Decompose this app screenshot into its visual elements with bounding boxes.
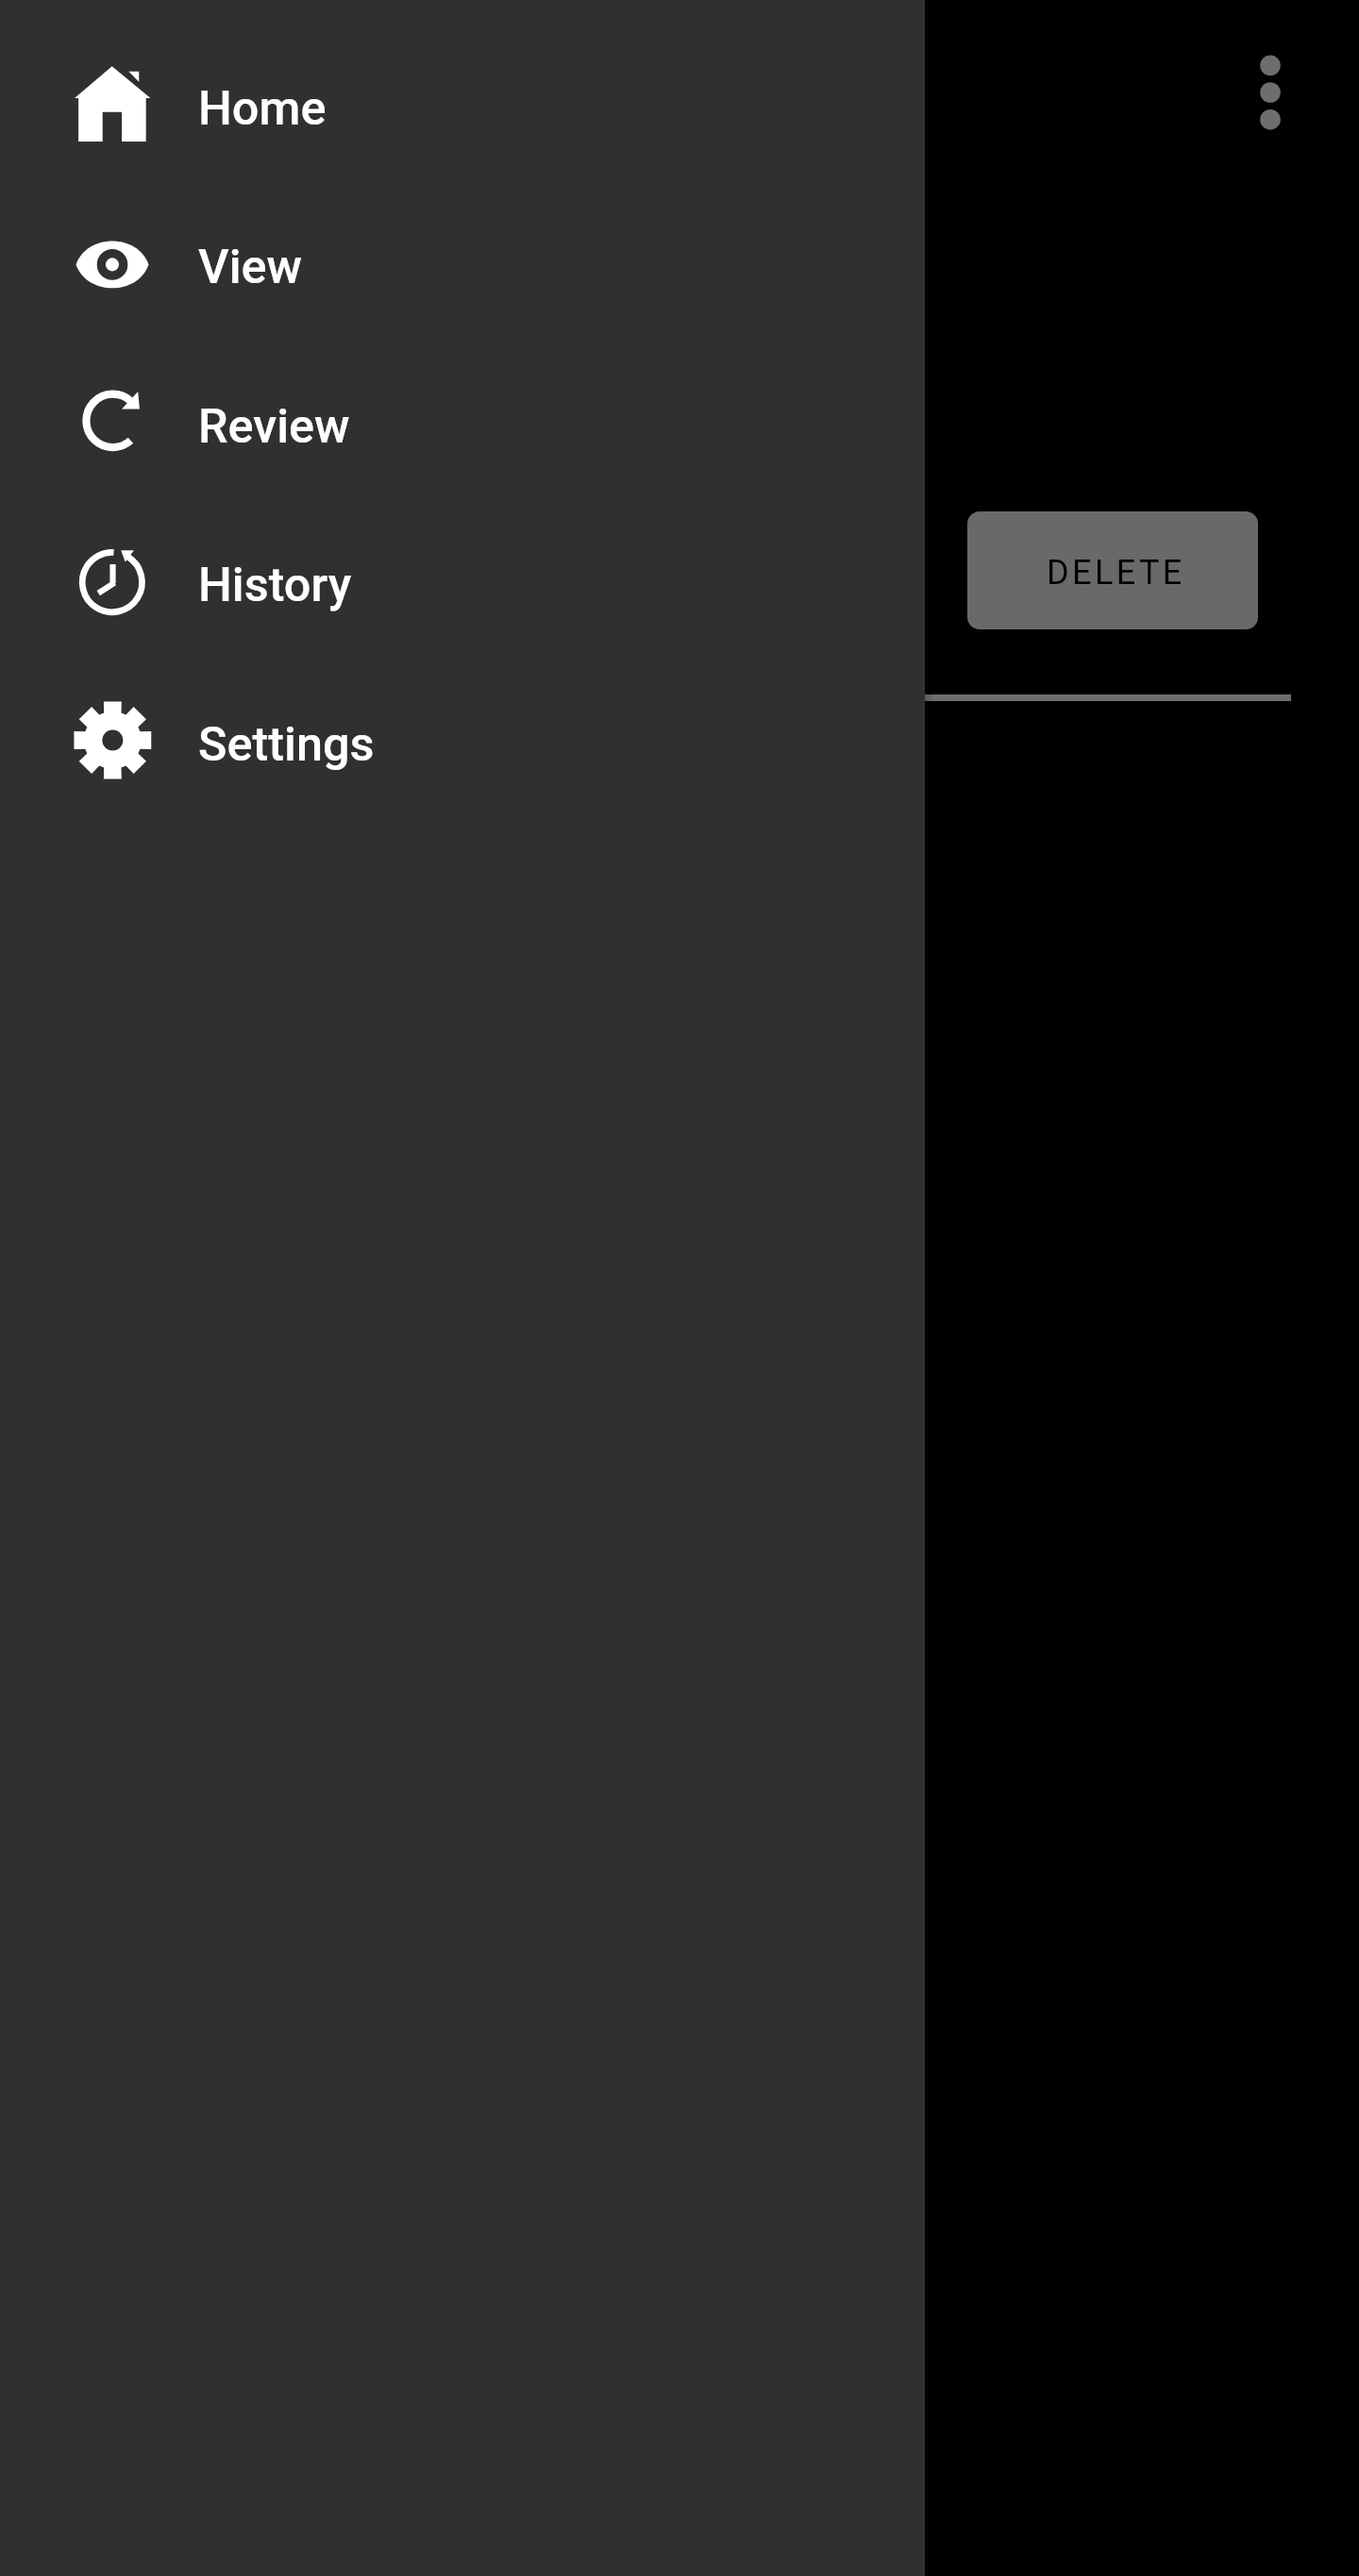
staticText: Home bbox=[198, 80, 327, 136]
button[interactable]: History bbox=[0, 501, 925, 661]
button[interactable]: DELETE bbox=[967, 511, 1258, 629]
staticText: Settings bbox=[198, 716, 375, 772]
staticText: History bbox=[198, 557, 352, 612]
staticText: DELETE bbox=[1047, 553, 1185, 593]
staticText: Review bbox=[198, 398, 350, 454]
button[interactable]: Home bbox=[0, 25, 925, 184]
button[interactable]: More options bbox=[1225, 21, 1316, 164]
button[interactable]: View bbox=[0, 183, 925, 343]
staticText: View bbox=[198, 239, 303, 294]
button[interactable]: Settings bbox=[0, 661, 925, 820]
button[interactable]: Review bbox=[0, 343, 925, 502]
